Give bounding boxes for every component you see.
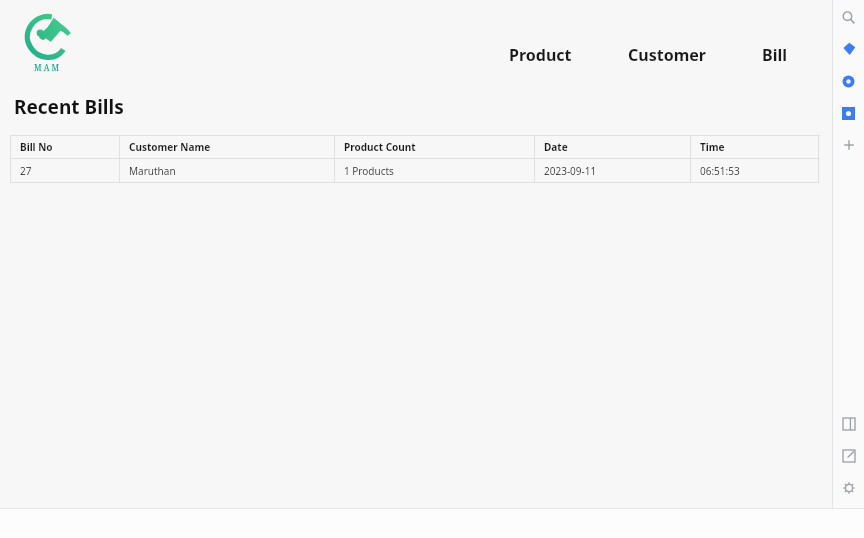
staticText: 06:51:53 (700, 164, 740, 178)
button[interactable]: Product (499, 36, 582, 74)
staticText: Product (509, 44, 572, 66)
button[interactable]: Side panel (833, 408, 864, 440)
button[interactable]: 27 (10, 159, 820, 182)
staticText: 27 (20, 164, 32, 178)
button[interactable]: Add (833, 129, 864, 161)
staticText: Bill (762, 44, 787, 66)
button[interactable]: Customer (618, 36, 716, 74)
button[interactable]: Capture (833, 97, 864, 129)
button[interactable]: Bookmarks (833, 33, 864, 65)
staticText: Customer (628, 44, 706, 66)
button[interactable]: MAM home (22, 12, 70, 73)
staticText: Customer Name (129, 140, 211, 154)
staticText: Maruthan (129, 164, 176, 178)
button[interactable]: Search (833, 1, 864, 33)
staticText: 2023-09-11 (544, 164, 597, 178)
staticText: Date (544, 140, 568, 154)
button[interactable]: Bill (752, 36, 797, 74)
staticText: Product Count (344, 140, 416, 154)
staticText: Recent Bills (14, 94, 124, 120)
staticText: 1 Products (344, 164, 394, 178)
button[interactable]: Settings (833, 472, 864, 504)
button[interactable]: Extension (833, 65, 864, 97)
button[interactable]: Open in new (833, 440, 864, 472)
staticText: M A M (34, 62, 59, 73)
staticText: Time (700, 140, 725, 154)
staticText: Bill No (20, 140, 53, 154)
